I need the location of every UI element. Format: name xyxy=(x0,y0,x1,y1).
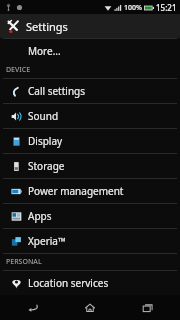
staticText: Sound xyxy=(28,109,59,123)
staticText: Apps xyxy=(28,209,52,223)
button[interactable]: Sound xyxy=(0,104,180,128)
staticText: 15:21 xyxy=(156,2,177,13)
button[interactable]: Location services xyxy=(0,271,180,295)
staticText: Display xyxy=(28,134,63,148)
button[interactable]: Power management xyxy=(0,179,180,203)
staticText: Storage xyxy=(28,159,65,173)
button[interactable]: Home xyxy=(65,295,115,320)
button[interactable]: Settings xyxy=(0,14,180,38)
button[interactable]: Call settings xyxy=(0,79,180,103)
staticText: Xperia™ xyxy=(28,234,66,248)
button[interactable]: Display xyxy=(0,129,180,153)
staticText: Power management xyxy=(28,184,124,198)
staticText: PERSONAL xyxy=(6,257,42,267)
button[interactable]: Xperia™ xyxy=(0,229,180,253)
button[interactable]: More... xyxy=(0,39,180,62)
staticText: Settings xyxy=(26,19,68,34)
staticText: 100% xyxy=(124,3,142,13)
button[interactable]: Apps xyxy=(0,204,180,228)
button[interactable]: Storage xyxy=(0,154,180,178)
staticText: DEVICE xyxy=(6,65,31,75)
button[interactable]: Back xyxy=(8,295,58,320)
staticText: Call settings xyxy=(28,84,86,98)
staticText: More... xyxy=(28,44,61,58)
staticText: Location services xyxy=(28,276,109,290)
button[interactable]: Recent apps xyxy=(123,295,173,320)
